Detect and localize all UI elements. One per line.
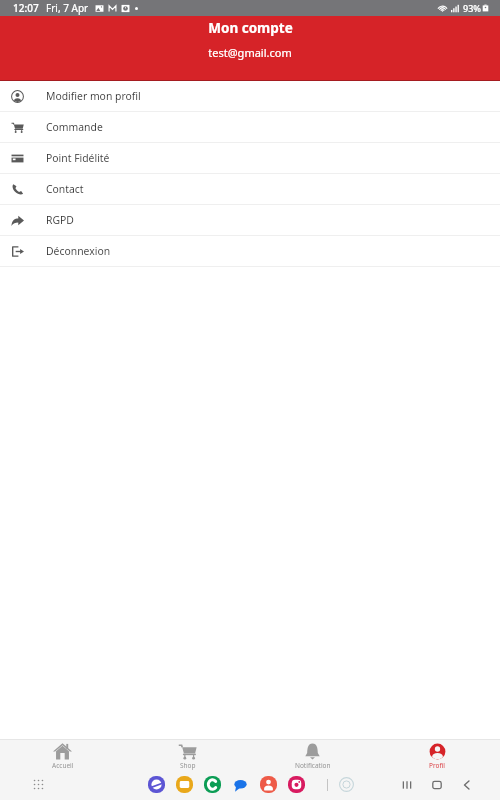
staticText: Modifier mon profil [46, 89, 141, 103]
button[interactable]: Instagram [288, 776, 305, 793]
button[interactable]: Profil [375, 740, 500, 775]
staticText: Accueil [52, 761, 74, 770]
button[interactable]: Contacts [260, 776, 277, 793]
staticText: Commande [46, 120, 103, 134]
staticText: Point Fidélité [46, 151, 110, 165]
staticText: test@gmail.com [208, 45, 292, 60]
button[interactable]: Notification [250, 740, 375, 775]
staticText: 12:07 [13, 1, 39, 15]
button[interactable]: Recents [400, 778, 414, 792]
button[interactable]: All apps [33, 772, 44, 797]
staticText: Profil [429, 761, 446, 770]
button[interactable]: RGPD [0, 205, 500, 236]
button[interactable]: Commande [0, 112, 500, 143]
staticText: RGPD [46, 213, 74, 227]
button[interactable]: My Files [176, 776, 193, 793]
button[interactable]: App shortcut [339, 777, 354, 792]
button[interactable]: Messages [232, 776, 249, 793]
button[interactable]: Shop [125, 740, 250, 775]
staticText: Notification [295, 761, 331, 770]
button[interactable]: Déconnexion [0, 236, 500, 267]
staticText: Mon compte [208, 19, 293, 37]
button[interactable]: Contact [0, 174, 500, 205]
button[interactable]: Accueil [0, 740, 125, 775]
staticText: Contact [46, 182, 84, 196]
button[interactable]: Point Fidélité [0, 143, 500, 174]
staticText: Déconnexion [46, 244, 111, 258]
button[interactable]: Modifier mon profil [0, 81, 500, 112]
staticText: 93% [463, 2, 481, 14]
staticText: Shop [180, 761, 196, 770]
staticText: Fri, 7 Apr [46, 1, 89, 15]
button[interactable]: Phone [204, 776, 221, 793]
button[interactable]: Samsung Internet [148, 776, 165, 793]
button[interactable]: Back [460, 778, 474, 792]
button[interactable]: Home [430, 778, 444, 792]
